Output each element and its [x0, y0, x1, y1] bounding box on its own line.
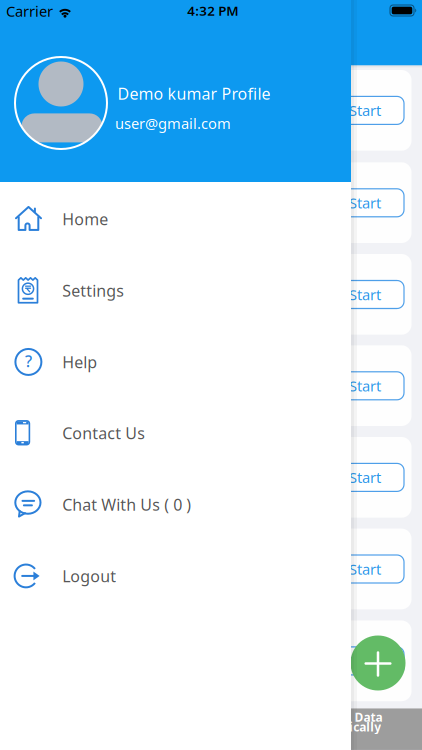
button[interactable]: Home [0, 183, 351, 255]
staticText: Start [349, 285, 381, 304]
button[interactable]: Demo kumar Profile [0, 11, 351, 171]
button[interactable]: Logout [0, 540, 351, 612]
staticText: Help [62, 351, 97, 372]
staticText: Chat With Us ( 0 ) [62, 494, 191, 515]
staticText: Start [349, 376, 381, 396]
button[interactable]: Chat With Us ( 0 ) [0, 469, 351, 540]
staticText: ? [25, 350, 32, 372]
staticText: Logout [62, 565, 116, 586]
staticText: Start [349, 193, 381, 213]
staticText: Start [349, 559, 381, 579]
staticText: user@gmail.com [115, 114, 231, 133]
button[interactable]: Start [326, 555, 404, 583]
staticText: Home [62, 208, 108, 229]
staticText: Start [349, 651, 381, 671]
button[interactable]: Add [350, 635, 405, 690]
staticText: Start [349, 468, 381, 487]
staticText: Settings [62, 280, 124, 301]
button[interactable]: Contact Us [0, 397, 351, 469]
button[interactable]: Start [326, 189, 404, 217]
staticText: Contact Us [62, 422, 145, 443]
staticText: Start [349, 101, 381, 120]
button[interactable]: Start [326, 463, 404, 491]
button[interactable]: Start [326, 372, 404, 400]
staticText: You Are Working In Offline Mode Applicat… [4, 709, 382, 725]
button[interactable]: ? [0, 326, 351, 398]
button[interactable]: Settings [0, 255, 351, 326]
button[interactable]: Start [326, 280, 404, 308]
staticText: It Will Be Synced To The Server Automati… [109, 719, 381, 735]
staticText: Carrier [6, 1, 53, 21]
staticText: Demo kumar Profile [117, 83, 270, 104]
button[interactable]: Start [326, 647, 404, 675]
button[interactable]: Start [326, 96, 404, 124]
staticText: 4:32 PM [187, 2, 238, 19]
